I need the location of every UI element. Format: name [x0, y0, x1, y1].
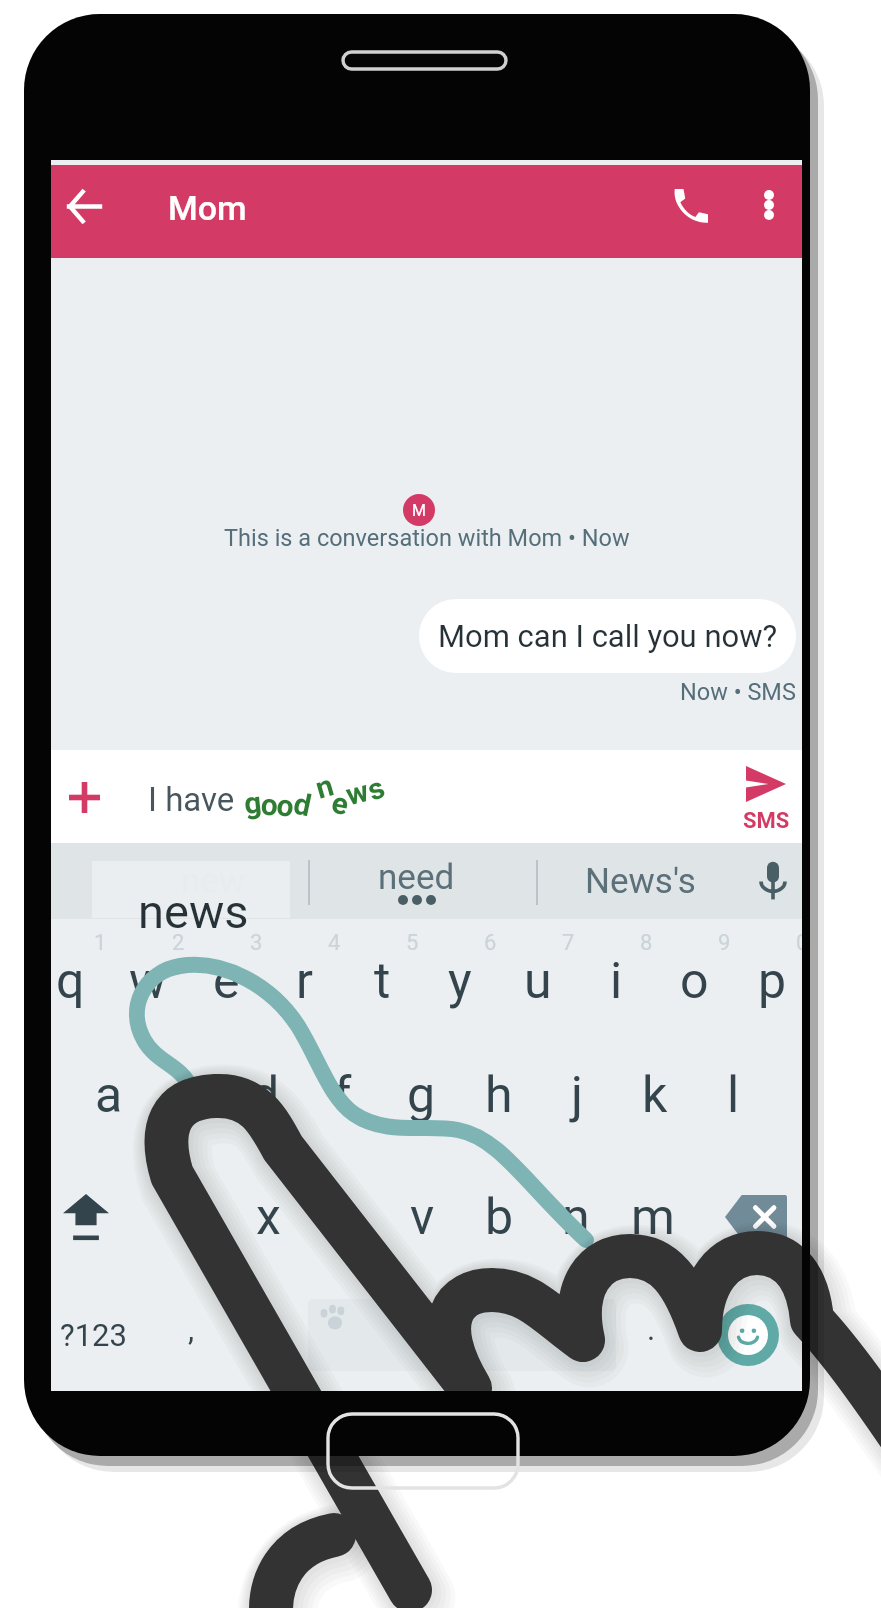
staticText: h: [485, 1066, 513, 1125]
staticText: s: [362, 769, 390, 808]
staticText: m: [631, 1188, 675, 1247]
staticText: ,: [188, 1311, 195, 1347]
staticText: q: [56, 952, 85, 1011]
button[interactable]: t: [343, 924, 421, 1038]
staticText: ?123: [60, 1317, 127, 1353]
staticText: Mom: [168, 188, 247, 228]
button[interactable]: h: [460, 1038, 538, 1152]
staticText: 1: [94, 930, 107, 956]
staticText: s: [174, 1066, 200, 1125]
button[interactable]: i: [577, 924, 655, 1038]
staticText: 6: [484, 930, 497, 956]
staticText: v: [410, 1188, 435, 1247]
staticText: n: [311, 767, 337, 806]
staticText: e: [213, 952, 240, 1011]
staticText: w: [129, 952, 167, 1011]
button[interactable]: f: [304, 1038, 382, 1152]
button[interactable]: z: [152, 1160, 230, 1274]
staticText: d: [290, 786, 314, 823]
button[interactable]: e: [187, 924, 265, 1038]
staticText: r: [296, 952, 313, 1011]
staticText: This is a conversation with Mom • Now: [224, 524, 630, 552]
staticText: w: [342, 773, 373, 812]
button[interactable]: Shift: [51, 1167, 136, 1267]
staticText: 0: [796, 930, 802, 956]
staticText: News's: [585, 861, 696, 902]
button[interactable]: More options: [739, 175, 799, 235]
button[interactable]: q: [51, 924, 109, 1038]
staticText: c: [332, 1188, 359, 1247]
button[interactable]: b: [460, 1160, 538, 1274]
button[interactable]: need: [336, 843, 496, 919]
staticText: z: [179, 1188, 204, 1247]
button[interactable]: y: [421, 924, 499, 1038]
staticText: Now • SMS: [680, 678, 796, 706]
staticText: b: [485, 1188, 514, 1247]
staticText: e: [329, 785, 352, 822]
button[interactable]: m: [614, 1160, 692, 1274]
button[interactable]: a: [70, 1038, 148, 1152]
staticText: news: [138, 884, 249, 939]
button[interactable]: Delete: [706, 1167, 802, 1267]
staticText: 5: [406, 930, 419, 956]
staticText: g: [242, 784, 264, 821]
button[interactable]: o: [655, 924, 733, 1038]
staticText: 4: [328, 930, 341, 956]
button[interactable]: g: [382, 1038, 460, 1152]
button[interactable]: Call: [656, 171, 724, 239]
button[interactable]: .: [612, 1285, 690, 1385]
staticText: Mom can I call you now?: [438, 618, 778, 654]
staticText: f: [334, 1066, 352, 1125]
staticText: 3: [250, 930, 263, 956]
button[interactable]: j: [538, 1038, 616, 1152]
button[interactable]: w: [109, 924, 187, 1038]
staticText: .: [647, 1311, 656, 1347]
staticText: 9: [718, 930, 731, 956]
staticText: I have: [148, 780, 235, 819]
staticText: need: [378, 857, 455, 898]
staticText: i: [610, 952, 623, 1011]
button[interactable]: p: [733, 924, 802, 1038]
button[interactable]: d: [226, 1038, 304, 1152]
button[interactable]: [308, 1285, 616, 1385]
staticText: y: [448, 952, 472, 1011]
staticText: o: [680, 952, 709, 1011]
staticText: o: [275, 787, 296, 824]
staticText: n: [562, 1188, 590, 1247]
button[interactable]: ,: [152, 1285, 230, 1385]
button[interactable]: n: [537, 1160, 615, 1274]
button[interactable]: u: [499, 924, 577, 1038]
staticText: l: [727, 1066, 740, 1125]
staticText: d: [251, 1066, 280, 1125]
staticText: 8: [640, 930, 653, 956]
button[interactable]: Emoji: [708, 1295, 788, 1375]
staticText: p: [758, 952, 787, 1011]
button[interactable]: News's: [550, 843, 730, 919]
button[interactable]: Mom can I call you now?: [419, 599, 796, 673]
staticText: M: [412, 501, 426, 520]
button[interactable]: Add attachment: [53, 766, 115, 828]
button[interactable]: ?123: [51, 1285, 153, 1385]
staticText: x: [256, 1188, 281, 1247]
staticText: t: [374, 952, 391, 1011]
button[interactable]: Change language: [226, 1285, 304, 1385]
staticText: 2: [172, 930, 185, 956]
button[interactable]: Voice input: [736, 843, 802, 919]
staticText: 7: [562, 930, 575, 956]
staticText: u: [524, 952, 552, 1011]
button[interactable]: new: [153, 843, 273, 919]
button[interactable]: c: [306, 1160, 384, 1274]
staticText: SMS: [743, 808, 790, 834]
staticText: a: [95, 1066, 123, 1125]
button[interactable]: k: [616, 1038, 694, 1152]
button[interactable]: Back: [54, 176, 114, 236]
staticText: k: [642, 1066, 668, 1125]
button[interactable]: v: [383, 1160, 461, 1274]
button[interactable]: s: [148, 1038, 226, 1152]
button[interactable]: l: [694, 1038, 772, 1152]
button[interactable]: r: [265, 924, 343, 1038]
button[interactable]: x: [229, 1160, 307, 1274]
button[interactable]: Send SMS: [700, 750, 802, 843]
staticText: j: [571, 1066, 583, 1125]
